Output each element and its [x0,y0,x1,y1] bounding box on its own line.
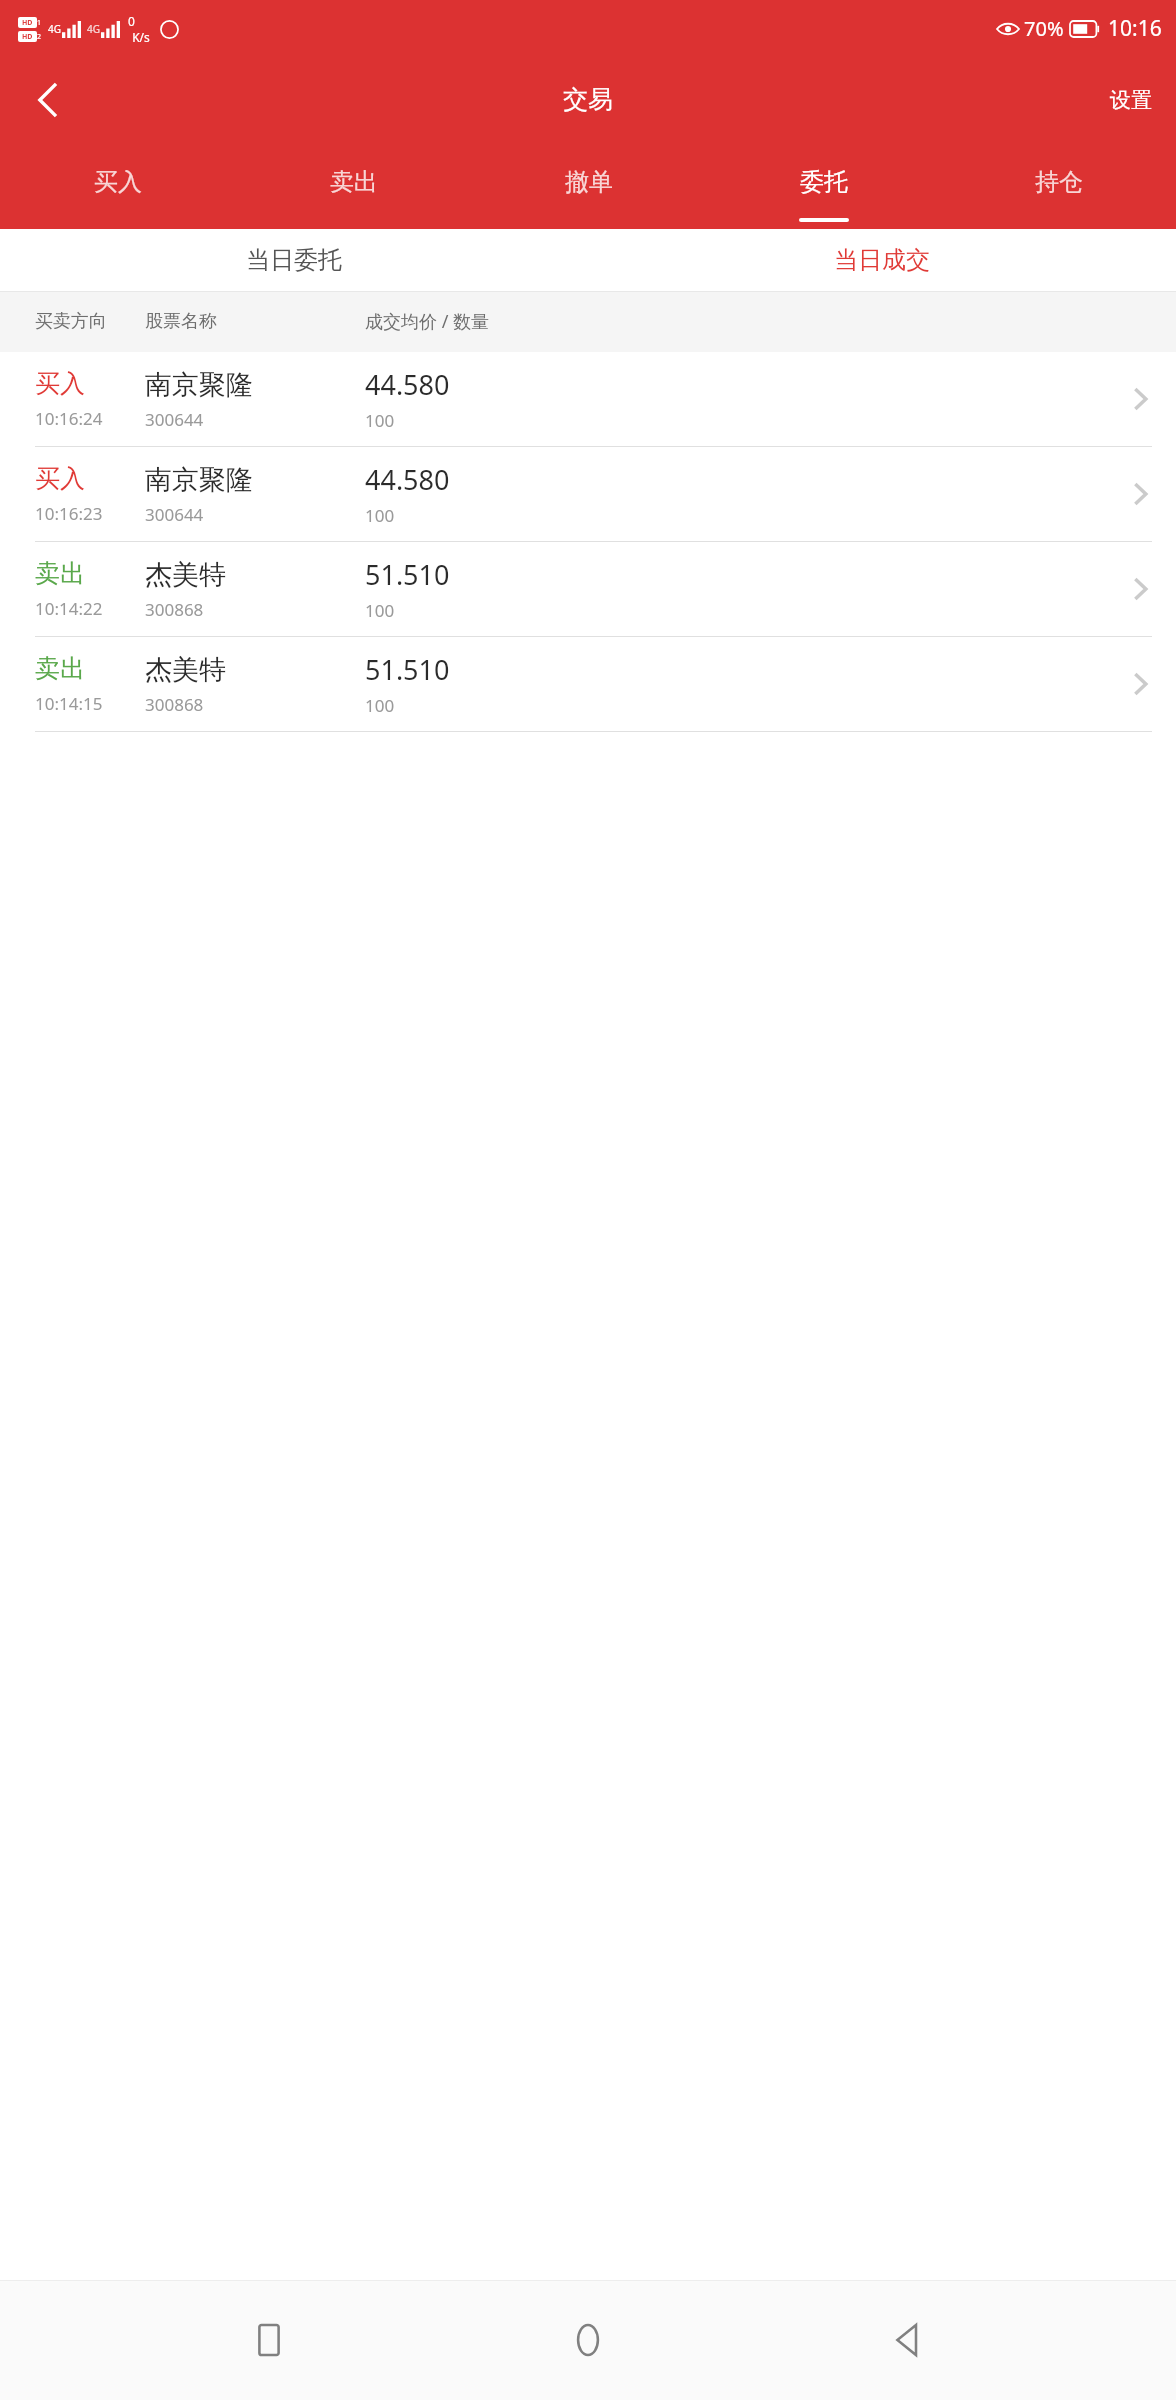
staticText: 交易 [563,84,613,115]
staticText: 70% [1024,15,1064,42]
staticText: 杰美特 [145,558,226,592]
staticText: 44.580 [365,461,450,498]
staticText: 成交均价 / 数量 [365,309,490,334]
staticText: 股票名称 [145,310,365,333]
staticText: 卖出 [35,558,85,589]
button[interactable]: 卖出 [0,637,1176,731]
staticText: 51.510 [365,556,450,593]
staticText: 10:16:24 [35,407,103,430]
staticText: 买卖方向 [35,310,145,333]
staticText: 南京聚隆 [145,463,253,497]
staticText: 100 [365,504,395,527]
staticText: 10:16:23 [35,502,103,525]
staticText: HD [22,18,33,28]
button[interactable]: 买入 [0,142,236,229]
button[interactable]: 持仓 [941,142,1176,229]
button[interactable]: Back [6,58,90,142]
staticText: 300868 [145,598,204,621]
staticText: 100 [365,599,395,622]
staticText: 300644 [145,408,204,431]
button[interactable]: Back [857,2290,957,2390]
staticText: 设置 [1110,87,1152,113]
staticText: 杰美特 [145,653,226,687]
staticText: 撤单 [565,167,613,197]
staticText: 买入 [35,368,85,399]
button[interactable]: 买入 [0,352,1176,446]
button[interactable]: 卖出 [0,542,1176,636]
staticText: 300644 [145,503,204,526]
staticText: 当日委托 [246,245,342,275]
button[interactable]: 设置 [1086,57,1176,142]
staticText: 10:16 [1108,14,1162,43]
staticText: 44.580 [365,366,450,403]
staticText: 300868 [145,693,204,716]
staticText: 当日成交 [834,245,930,275]
staticText: 卖出 [330,167,378,197]
staticText: 1 [37,18,42,28]
button[interactable]: Home [538,2290,638,2390]
staticText: 卖出 [35,653,85,684]
button[interactable]: 买入 [0,447,1176,541]
button[interactable]: 撤单 [471,142,706,229]
staticText: 100 [365,694,395,717]
staticText: K/s [128,29,154,45]
staticText: HD [22,32,33,42]
staticText: 4G [48,22,61,36]
staticText: 10:14:15 [35,692,103,715]
button[interactable]: 卖出 [236,142,471,229]
staticText: 买入 [35,463,85,494]
staticText: 委托 [800,167,848,197]
button[interactable]: 委托 [706,142,941,229]
staticText: 100 [365,409,395,432]
button[interactable]: 当日委托 [0,229,588,291]
staticText: 买入 [94,167,142,197]
staticText: 4G [87,22,100,36]
button[interactable]: 当日成交 [588,229,1176,291]
staticText: 10:14:22 [35,597,103,620]
staticText: 51.510 [365,651,450,688]
staticText: 南京聚隆 [145,368,253,402]
staticText: 0 [128,13,154,29]
staticText: 持仓 [1035,167,1083,197]
staticText: 2 [37,32,42,42]
button[interactable]: Recent apps [219,2290,319,2390]
